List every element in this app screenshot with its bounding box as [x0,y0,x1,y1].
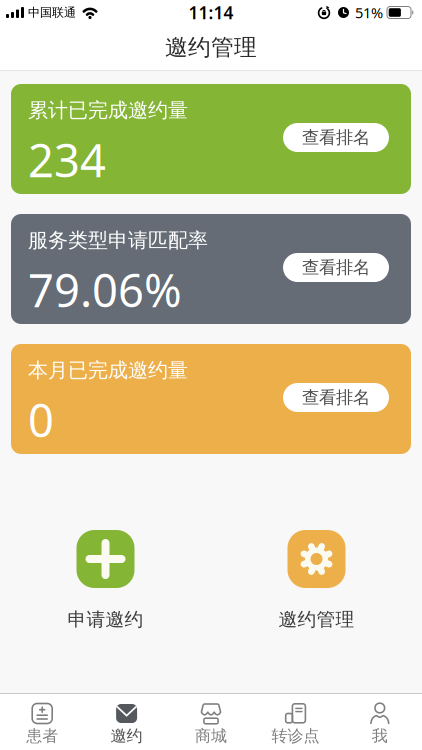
staticText: 查看排名 [302,387,370,408]
staticText: 转诊点 [271,726,319,746]
button[interactable]: 转诊点 [253,694,338,750]
staticText: 查看排名 [302,127,370,148]
staticText: 商城 [195,726,227,746]
button[interactable]: 查看排名 [283,123,389,152]
staticText: 234 [28,130,106,190]
button[interactable]: 查看排名 [283,253,389,282]
button[interactable]: 邀约 [84,694,169,750]
staticText: 邀约管理 [278,608,354,631]
staticText: 患者 [26,726,58,746]
staticText: 申请邀约 [67,608,143,631]
staticText: 我 [372,726,388,746]
staticText: 邀约 [111,726,143,746]
staticText: 累计已完成邀约量 [28,98,188,123]
staticText: 服务类型申请匹配率 [28,228,208,253]
button[interactable]: 邀约管理 [278,530,354,631]
staticText: 11:14 [188,1,233,24]
staticText: 查看排名 [302,257,370,278]
staticText: 本月已完成邀约量 [28,358,188,383]
button[interactable]: 申请邀约 [67,530,143,631]
staticText: 邀约管理 [165,34,257,61]
button[interactable]: 商城 [169,694,253,750]
staticText: 0 [28,390,54,450]
staticText: 中国联通 [28,5,76,20]
button[interactable]: 查看排名 [283,383,389,412]
button[interactable]: 患者 [0,694,84,750]
staticText: 79.06% [28,260,182,320]
button[interactable]: 我 [338,694,422,750]
staticText: 51% [355,3,383,22]
